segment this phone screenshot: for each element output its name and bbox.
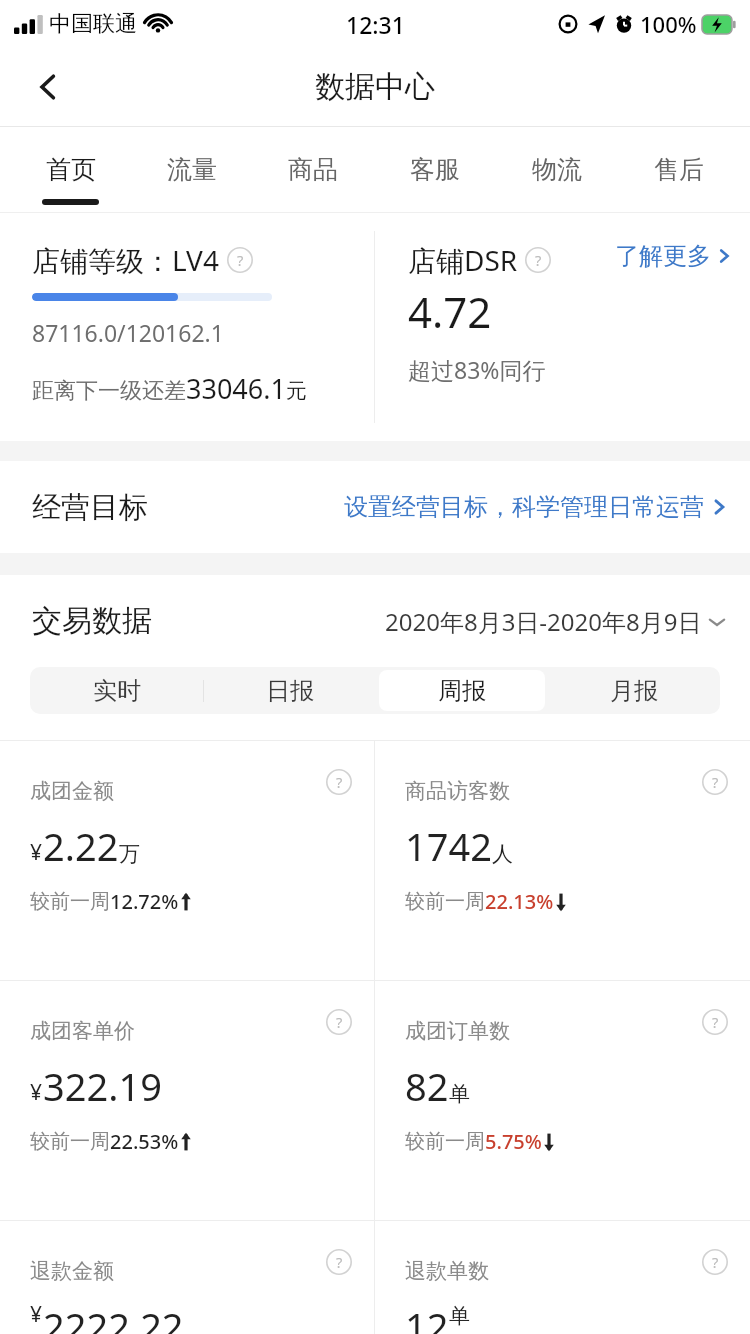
- staticText: 33046.1: [186, 370, 286, 407]
- staticText: 单: [449, 1303, 470, 1329]
- button[interactable]: Help: [326, 769, 352, 795]
- staticText: 店铺等级：LV4: [32, 241, 219, 279]
- staticText: 首页: [46, 154, 96, 185]
- staticText: 商品: [288, 154, 338, 185]
- staticText: 售后: [654, 154, 704, 185]
- staticText: ¥: [30, 1078, 43, 1107]
- staticText: 退款金额: [30, 1258, 114, 1284]
- staticText: 2.22: [43, 820, 119, 872]
- staticText: 2020年8月3日-2020年8月9日: [385, 605, 702, 638]
- button[interactable]: 月报: [551, 670, 717, 711]
- button[interactable]: Help: [375, 1221, 750, 1334]
- button[interactable]: Help: [0, 1221, 374, 1334]
- button[interactable]: 日报: [207, 670, 373, 711]
- staticText: 万: [119, 841, 140, 867]
- staticText: 了解更多: [615, 241, 711, 271]
- button[interactable]: 物流: [496, 127, 618, 212]
- staticText: 较前一周: [30, 889, 110, 914]
- button[interactable]: Help: [326, 1009, 352, 1035]
- staticText: ?: [712, 1012, 719, 1032]
- staticText: 经营目标: [32, 489, 148, 526]
- button[interactable]: Help: [0, 741, 374, 980]
- staticText: 12: [405, 1300, 449, 1334]
- staticText: 实时: [93, 676, 141, 706]
- button[interactable]: Help: [702, 1009, 728, 1035]
- staticText: ¥: [30, 1300, 43, 1329]
- staticText: 客服: [410, 154, 460, 185]
- staticText: 成团订单数: [405, 1018, 510, 1044]
- button[interactable]: Back: [22, 61, 74, 113]
- staticText: 交易数据: [32, 602, 152, 640]
- staticText: 店铺DSR: [408, 241, 518, 279]
- button[interactable]: 店铺等级：LV4: [0, 213, 374, 441]
- staticText: 超过83%同行: [408, 354, 546, 385]
- button[interactable]: Help: [227, 247, 253, 273]
- button[interactable]: 了解更多: [615, 241, 734, 271]
- staticText: 中国联通: [49, 10, 137, 38]
- button[interactable]: Help: [375, 981, 750, 1220]
- button[interactable]: 售后: [618, 127, 740, 212]
- staticText: 2222.22: [43, 1300, 184, 1334]
- staticText: 日报: [266, 676, 314, 706]
- button[interactable]: 商品: [252, 127, 374, 212]
- staticText: 12:31: [346, 9, 405, 40]
- staticText: ?: [237, 250, 244, 270]
- button[interactable]: Help: [375, 741, 750, 980]
- staticText: 4.72: [408, 283, 492, 340]
- staticText: 月报: [610, 676, 658, 706]
- staticText: 5.75%: [485, 1128, 542, 1155]
- staticText: 82: [405, 1060, 449, 1112]
- button[interactable]: 流量: [131, 127, 252, 212]
- staticText: 22.13%: [485, 888, 554, 915]
- staticText: 设置经营目标，科学管理日常运营: [344, 492, 704, 522]
- staticText: ?: [336, 772, 343, 792]
- staticText: 物流: [532, 154, 582, 185]
- staticText: ?: [336, 1012, 343, 1032]
- button[interactable]: Help: [702, 1249, 728, 1275]
- staticText: ?: [712, 772, 719, 792]
- staticText: 商品访客数: [405, 778, 510, 804]
- staticText: 较前一周: [405, 1129, 485, 1154]
- button[interactable]: 客服: [374, 127, 496, 212]
- staticText: 人: [492, 841, 513, 867]
- button[interactable]: Help: [0, 981, 374, 1220]
- staticText: 12.72%: [110, 888, 179, 915]
- staticText: 元: [286, 378, 307, 404]
- staticText: 退款单数: [405, 1258, 489, 1284]
- staticText: 较前一周: [30, 1129, 110, 1154]
- button[interactable]: 2020年8月3日-2020年8月9日: [385, 605, 726, 638]
- staticText: 成团金额: [30, 778, 114, 804]
- button[interactable]: Help: [525, 247, 551, 273]
- staticText: 周报: [438, 676, 486, 706]
- button[interactable]: 周报: [379, 670, 545, 711]
- staticText: 322.19: [43, 1060, 162, 1112]
- staticText: ?: [712, 1252, 719, 1272]
- staticText: ?: [535, 250, 542, 270]
- staticText: ¥: [30, 838, 43, 867]
- staticText: 距离下一级还差: [32, 377, 186, 405]
- staticText: 流量: [167, 154, 217, 185]
- staticText: 较前一周: [405, 889, 485, 914]
- button[interactable]: 经营目标: [0, 461, 750, 553]
- staticText: ?: [336, 1252, 343, 1272]
- staticText: 22.53%: [110, 1128, 179, 1155]
- staticText: 1742: [405, 820, 492, 872]
- button[interactable]: Help: [326, 1249, 352, 1275]
- staticText: 87116.0/120162.1: [32, 317, 224, 348]
- staticText: 成团客单价: [30, 1018, 135, 1044]
- staticText: 100%: [640, 9, 697, 39]
- button[interactable]: 实时: [33, 670, 200, 711]
- button[interactable]: Help: [702, 769, 728, 795]
- staticText: 单: [449, 1081, 470, 1107]
- staticText: 数据中心: [315, 68, 435, 106]
- button[interactable]: 首页: [10, 127, 131, 212]
